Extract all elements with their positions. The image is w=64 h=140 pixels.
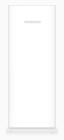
button[interactable]: Upright freezer product image — [0, 0, 64, 140]
